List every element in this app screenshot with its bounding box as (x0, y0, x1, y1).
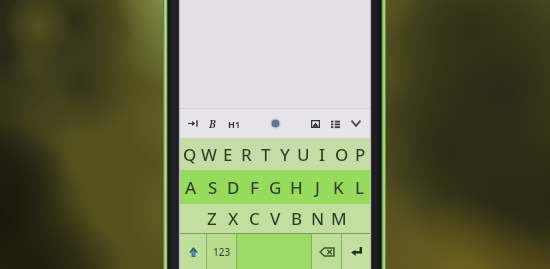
staticText: S (208, 176, 218, 199)
button[interactable]: T (256, 138, 275, 170)
staticText: P (355, 143, 366, 166)
button[interactable]: V (265, 204, 286, 233)
button[interactable]: D (223, 170, 244, 204)
staticText: M (331, 207, 347, 230)
button[interactable]: L (349, 170, 370, 204)
button[interactable]: Insert image (305, 109, 325, 138)
staticText: X (228, 207, 239, 230)
staticText: T (261, 143, 271, 166)
button[interactable]: Y (275, 138, 294, 170)
button[interactable]: Enter (342, 234, 370, 269)
button[interactable]: H (286, 170, 307, 204)
staticText: B (209, 117, 216, 131)
button[interactable]: Bold (202, 109, 222, 138)
staticText: H1 (228, 118, 241, 130)
staticText: R (241, 143, 252, 166)
button[interactable]: O (332, 138, 351, 170)
staticText: H (290, 176, 303, 199)
staticText: K (333, 176, 344, 199)
button[interactable]: N (307, 204, 328, 233)
button[interactable]: U (294, 138, 313, 170)
staticText: U (297, 143, 310, 166)
staticText: J (315, 176, 320, 199)
staticText: C (249, 207, 260, 230)
staticText: I (319, 143, 326, 166)
button[interactable]: Backspace (312, 234, 341, 269)
button[interactable]: Hide keyboard (345, 109, 367, 138)
button[interactable]: W (199, 138, 218, 170)
button[interactable]: F (244, 170, 265, 204)
button[interactable]: I (313, 138, 332, 170)
staticText: Y (280, 143, 290, 166)
staticText: Z (207, 207, 217, 230)
staticText: A (185, 176, 197, 199)
staticText: N (311, 207, 325, 230)
button[interactable]: G (265, 170, 286, 204)
button[interactable]: P (351, 138, 370, 170)
button[interactable]: A (180, 170, 202, 204)
button[interactable]: C (244, 204, 265, 233)
button[interactable]: R (237, 138, 256, 170)
staticText: 123 (213, 245, 231, 259)
staticText: B (291, 207, 303, 230)
button[interactable]: E (218, 138, 237, 170)
staticText: G (269, 176, 282, 199)
staticText: L (355, 176, 365, 199)
button[interactable]: J (307, 170, 328, 204)
button[interactable]: Shift (180, 234, 206, 269)
button[interactable]: Heading 1 (222, 109, 246, 138)
button[interactable]: M (328, 204, 349, 233)
button[interactable]: Z (201, 204, 223, 233)
button[interactable]: X (223, 204, 244, 233)
staticText: O (335, 143, 349, 166)
staticText: F (250, 176, 259, 199)
staticText: Q (183, 143, 197, 166)
button[interactable]: B (286, 204, 307, 233)
button[interactable]: Text colour (246, 109, 305, 138)
button[interactable]: Q (180, 138, 199, 170)
button[interactable]: Bullet list (325, 109, 345, 138)
button[interactable]: K (328, 170, 349, 204)
staticText: E (223, 143, 233, 166)
button[interactable]: 123 (207, 234, 236, 269)
button[interactable]: S (202, 170, 223, 204)
staticText: V (270, 207, 281, 230)
staticText: W (201, 143, 217, 166)
staticText: D (227, 176, 240, 199)
button[interactable]: Indent (183, 109, 202, 138)
